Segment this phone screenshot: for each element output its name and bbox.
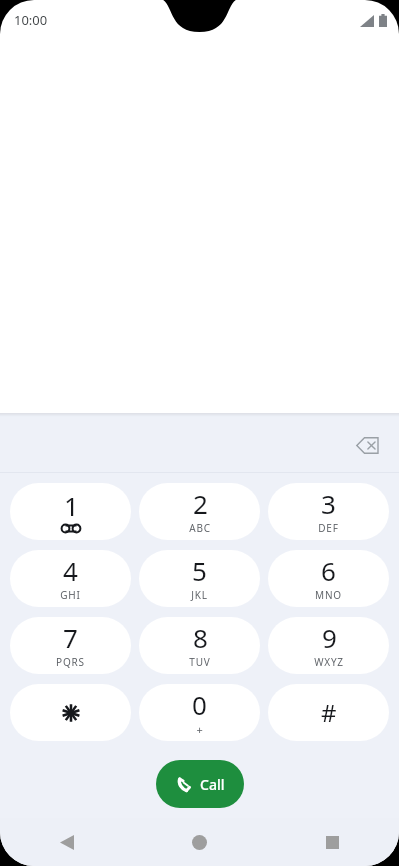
- staticText: 8: [193, 620, 208, 655]
- staticText: 0: [192, 687, 207, 722]
- button[interactable]: 0: [139, 684, 260, 741]
- staticText: 6: [321, 553, 336, 588]
- button[interactable]: Call: [156, 760, 244, 808]
- button[interactable]: 6: [268, 550, 389, 607]
- button[interactable]: #: [268, 684, 389, 741]
- staticText: 5: [192, 553, 207, 588]
- button[interactable]: 4: [10, 550, 131, 607]
- button[interactable]: Recent apps: [266, 818, 399, 866]
- staticText: Call: [200, 775, 225, 794]
- button[interactable]: 5: [139, 550, 260, 607]
- staticText: +: [196, 722, 204, 737]
- staticText: 3: [321, 486, 336, 521]
- staticText: 7: [63, 620, 78, 655]
- button[interactable]: 3: [268, 483, 389, 540]
- button[interactable]: Backspace: [345, 423, 389, 467]
- button[interactable]: [10, 684, 131, 741]
- staticText: 4: [63, 553, 78, 588]
- button[interactable]: 1: [10, 483, 131, 540]
- staticText: ABC: [189, 521, 211, 535]
- button[interactable]: Back: [0, 818, 133, 866]
- staticText: PQRS: [56, 655, 85, 669]
- staticText: GHI: [60, 588, 81, 602]
- button[interactable]: 7: [10, 617, 131, 674]
- staticText: WXYZ: [314, 655, 344, 669]
- button[interactable]: 2: [139, 483, 260, 540]
- staticText: 10:00: [14, 11, 48, 29]
- staticText: DEF: [318, 521, 339, 535]
- staticText: #: [321, 696, 337, 729]
- button[interactable]: Home: [133, 818, 266, 866]
- button[interactable]: 9: [268, 617, 389, 674]
- staticText: JKL: [191, 588, 208, 602]
- button[interactable]: 8: [139, 617, 260, 674]
- staticText: TUV: [189, 655, 211, 669]
- staticText: 9: [322, 620, 337, 655]
- staticText: MNO: [315, 588, 342, 602]
- staticText: 1: [64, 488, 79, 523]
- staticText: 2: [193, 486, 208, 521]
